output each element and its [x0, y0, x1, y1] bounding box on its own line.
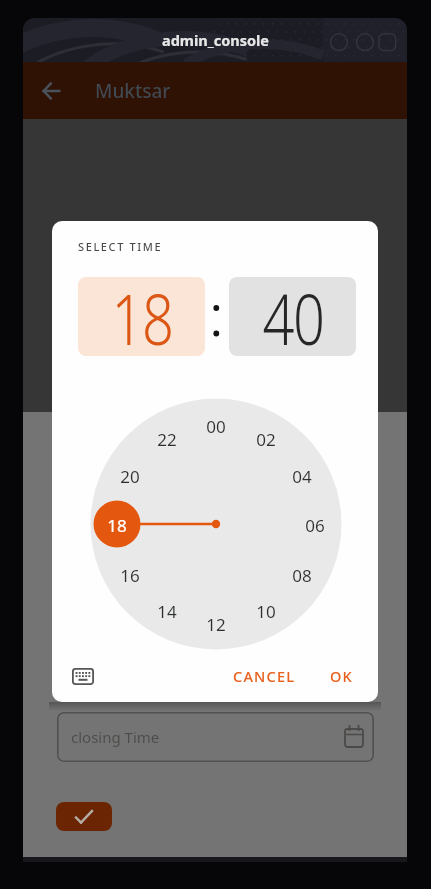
staticText: 22	[157, 428, 177, 448]
staticText: 18	[112, 277, 172, 349]
staticText: OK	[330, 666, 353, 686]
button[interactable]: CANCEL	[228, 661, 300, 691]
button[interactable]: OK	[320, 661, 362, 691]
button[interactable]	[56, 802, 112, 831]
button[interactable]: 40	[229, 277, 356, 356]
staticText: 02	[256, 428, 276, 448]
staticText: 00	[206, 415, 226, 435]
staticText: 04	[292, 465, 312, 485]
staticText: 10	[256, 600, 276, 620]
staticText: SELECT TIME	[78, 239, 163, 254]
button[interactable]	[61, 654, 105, 698]
staticText: 18	[107, 514, 127, 534]
staticText: 16	[120, 564, 140, 584]
staticText: 14	[157, 600, 177, 620]
staticText: admin_console	[162, 30, 269, 50]
staticText: 20	[120, 465, 140, 485]
staticText: 06	[305, 514, 325, 534]
staticText: 12	[206, 613, 226, 633]
staticText: 08	[292, 564, 312, 584]
staticText: closing Time	[71, 727, 160, 747]
button[interactable]: 18	[78, 277, 205, 356]
button[interactable]	[36, 75, 68, 107]
staticText: 40	[263, 277, 323, 349]
staticText: Muktsar	[95, 78, 171, 104]
staticText: CANCEL	[233, 666, 296, 686]
button[interactable]: closing Time	[57, 712, 374, 762]
